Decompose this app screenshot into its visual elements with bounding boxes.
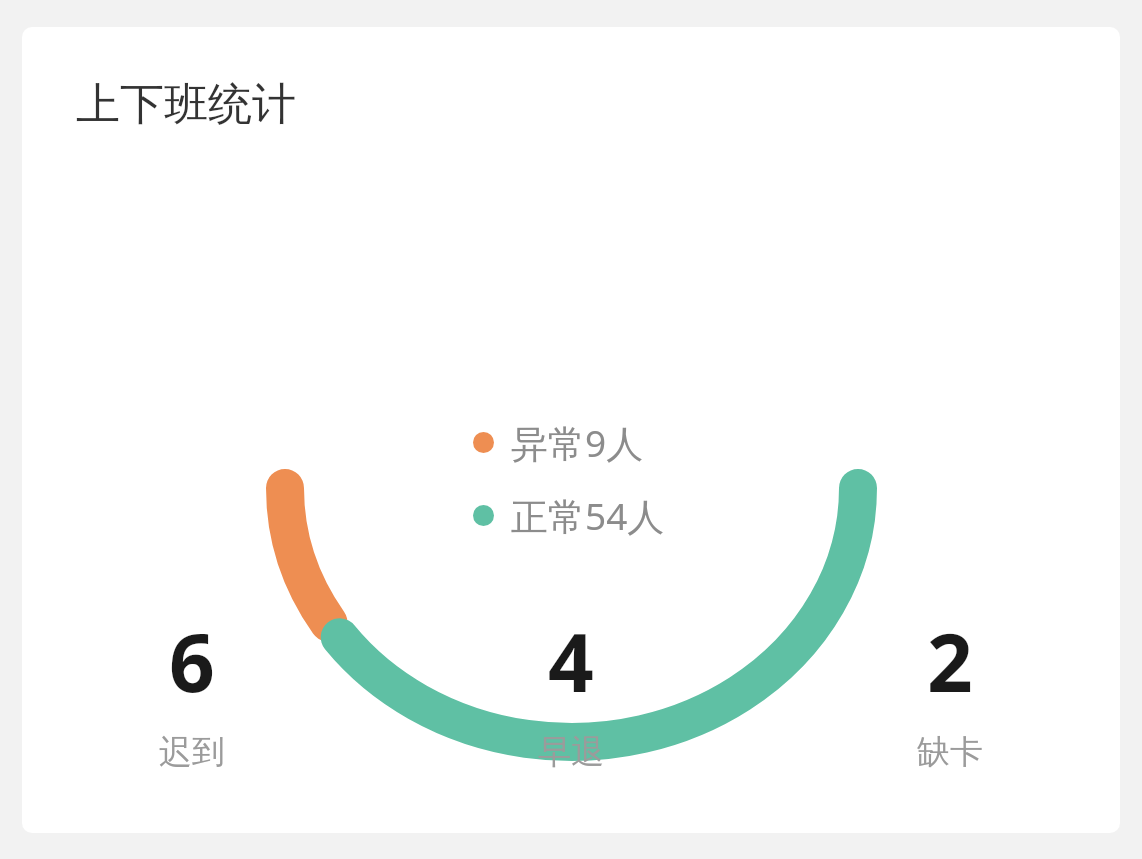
staticText: 缺卡 xyxy=(917,731,983,773)
button[interactable]: 上下班统计 xyxy=(22,27,1120,833)
staticText: 异常9人 xyxy=(511,417,644,468)
staticText: 6 xyxy=(169,606,215,715)
staticText: 早退 xyxy=(538,731,604,773)
staticText: 正常54人 xyxy=(511,490,665,541)
staticText: 迟到 xyxy=(159,731,225,773)
button[interactable]: 2 xyxy=(810,606,1090,773)
button[interactable]: 4 xyxy=(431,606,711,773)
button[interactable]: 6 xyxy=(52,606,332,773)
staticText: 2 xyxy=(927,606,973,715)
staticText: 4 xyxy=(548,606,594,715)
staticText: 上下班统计 xyxy=(76,77,296,132)
